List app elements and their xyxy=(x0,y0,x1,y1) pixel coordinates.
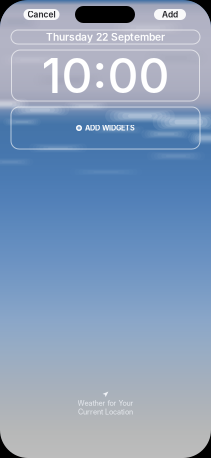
button[interactable]: Add xyxy=(154,9,186,20)
button[interactable]: ADD WIDGETS xyxy=(11,107,200,149)
staticText: Weather for Your xyxy=(77,399,133,407)
staticText: Thursday 22 September xyxy=(46,31,165,43)
staticText: ADD WIDGETS xyxy=(85,124,135,132)
staticText: Current Location xyxy=(78,407,133,416)
staticText: Cancel xyxy=(27,9,55,19)
staticText: Add xyxy=(162,9,178,19)
staticText: 10:00 xyxy=(41,46,169,105)
button[interactable]: Cancel xyxy=(23,9,59,20)
